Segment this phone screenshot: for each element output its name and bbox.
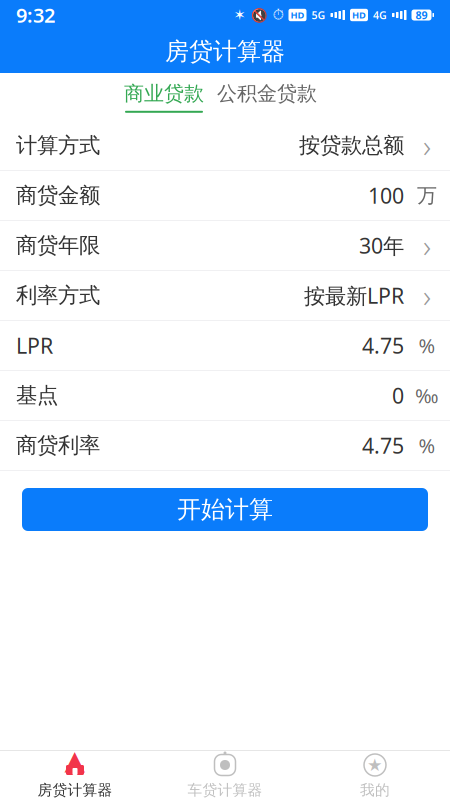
staticText: %	[418, 332, 435, 359]
staticText: 我的	[360, 781, 390, 799]
staticText: ▲	[64, 745, 85, 775]
staticText: 100	[368, 181, 404, 210]
button[interactable]: 车贷计算器	[150, 751, 300, 800]
staticText: 房贷计算器	[37, 781, 112, 799]
staticText: %	[418, 432, 435, 459]
button[interactable]: 计算方式	[0, 121, 450, 171]
staticText: 4.75	[362, 431, 404, 460]
staticText: 车贷计算器	[187, 781, 262, 799]
button[interactable]: 基点	[0, 371, 450, 421]
staticText: ›	[423, 225, 431, 266]
staticText: 商贷利率	[16, 432, 100, 459]
staticText: ›	[423, 125, 431, 166]
staticText: 5G	[311, 8, 325, 22]
staticText: 4G	[373, 8, 387, 22]
staticText: 公积金贷款	[217, 81, 317, 106]
button[interactable]: 房贷计算器	[0, 30, 450, 73]
button[interactable]: ▲	[0, 751, 150, 800]
staticText: 🔇	[250, 7, 267, 23]
button[interactable]: 商业贷款	[116, 73, 212, 121]
staticText: 商业贷款	[124, 81, 204, 106]
staticText: 万	[417, 183, 437, 208]
staticText: 商贷年限	[16, 232, 100, 259]
staticText: ✶	[233, 7, 245, 23]
button[interactable]: 利率方式	[0, 271, 450, 321]
staticText: ★	[367, 755, 383, 775]
staticText: 4.75	[362, 331, 404, 360]
staticText: 开始计算	[177, 495, 273, 524]
staticText: ›	[423, 275, 431, 316]
staticText: 30年	[359, 231, 404, 260]
button[interactable]: ★	[300, 751, 450, 800]
staticText: HD	[352, 9, 366, 21]
button[interactable]: 开始计算	[22, 488, 428, 531]
staticText: 0	[392, 381, 404, 410]
staticText: HD	[290, 9, 304, 21]
staticText: 按贷款总额	[299, 132, 404, 159]
staticText: 利率方式	[16, 282, 100, 309]
button[interactable]: 公积金贷款	[212, 73, 322, 121]
button[interactable]: 商贷年限	[0, 221, 450, 271]
staticText: 按最新LPR	[304, 281, 404, 310]
staticText: 基点	[16, 382, 58, 409]
staticText: ‰	[415, 382, 439, 409]
staticText: 计算方式	[16, 132, 100, 159]
staticText: 9:32	[16, 2, 55, 28]
button[interactable]: LPR	[0, 321, 450, 371]
staticText: LPR	[16, 331, 53, 360]
staticText: ⏱	[272, 8, 283, 22]
staticText: 商贷金额	[16, 182, 100, 209]
staticText: 89	[415, 8, 427, 22]
button[interactable]: 商贷金额	[0, 171, 450, 221]
button[interactable]: 商贷利率	[0, 421, 450, 471]
staticText: 房贷计算器	[165, 37, 285, 66]
